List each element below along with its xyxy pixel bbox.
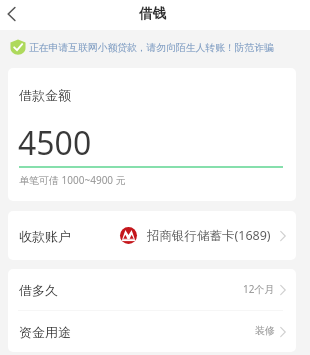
staticText: 借款金额 — [19, 87, 71, 103]
staticText: 资金用途 — [19, 324, 71, 340]
staticText: 招商银行储蓄卡(1689) — [147, 227, 271, 244]
staticText: 4500 — [18, 121, 92, 165]
staticText: 单笔可借 1000~4900 元 — [19, 173, 126, 187]
staticText: 装修 — [255, 324, 275, 337]
button[interactable]: 资金用途 — [8, 311, 296, 352]
button[interactable]: Back — [0, 2, 23, 28]
button[interactable]: 借多久 — [8, 269, 296, 310]
staticText: 12个月 — [243, 282, 275, 296]
staticText: 借多久 — [19, 282, 58, 298]
staticText: 正在申请互联网小额贷款，请勿向陌生人转账！防范诈骗 — [29, 42, 274, 54]
staticText: 收款账户 — [19, 228, 71, 244]
button[interactable]: 收款账户 — [8, 211, 296, 260]
staticText: 借钱 — [139, 5, 166, 22]
